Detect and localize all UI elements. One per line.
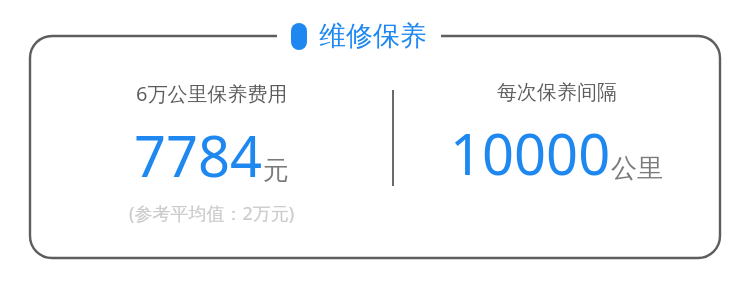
button[interactable]: 6万公里保养费用 xyxy=(30,80,393,226)
staticText: 7784 xyxy=(134,117,263,193)
button[interactable]: 维修保养图标 xyxy=(291,19,427,53)
button[interactable]: 每次保养间隔 xyxy=(393,80,720,191)
staticText: 10000 xyxy=(450,115,611,191)
staticText: 维修保养 xyxy=(319,19,427,53)
staticText: 6万公里保养费用 xyxy=(136,80,288,107)
staticText: 元 xyxy=(263,154,289,187)
staticText: 公里 xyxy=(611,152,663,185)
staticText: (参考平均值：2万元) xyxy=(129,201,295,226)
other: 维修保养图标 xyxy=(291,23,307,50)
staticText: 每次保养间隔 xyxy=(497,80,617,105)
